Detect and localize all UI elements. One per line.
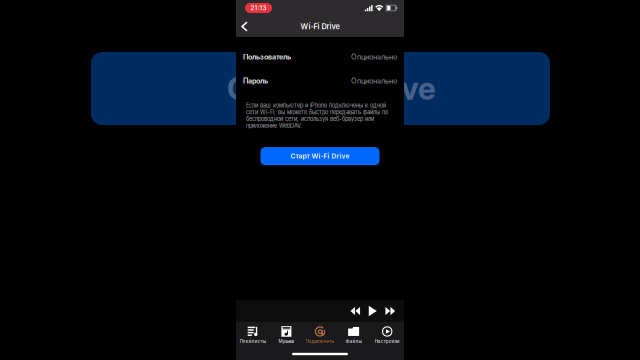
button[interactable]: Настройки <box>370 323 404 347</box>
button[interactable]: Старт Wi-Fi Drive <box>260 147 379 165</box>
staticText: Пароль <box>243 77 268 85</box>
button[interactable]: Музыка <box>270 323 303 347</box>
staticText: Connect Drive <box>227 70 436 107</box>
staticText: Плейлисты <box>240 339 266 344</box>
button[interactable]: Плейлисты <box>236 323 270 347</box>
button[interactable]: Подключить <box>303 323 337 347</box>
staticText: Опционально <box>351 77 397 85</box>
button[interactable]: Play <box>364 303 381 319</box>
staticText: Старт Wi-Fi Drive <box>290 152 349 160</box>
staticText: Подключить <box>305 339 334 344</box>
staticText: 21:13 <box>250 4 266 12</box>
button[interactable]: Back <box>236 16 253 37</box>
staticText: Опционально <box>351 53 397 61</box>
staticText: Если ваш компьютер и iPhone подключены к… <box>246 102 388 129</box>
button[interactable]: Пароль <box>236 69 404 93</box>
staticText: Файлы <box>346 339 362 344</box>
button[interactable]: Пользователь <box>236 45 404 69</box>
staticText: Настройки <box>375 339 400 344</box>
staticText: Пользователь <box>243 53 291 61</box>
button[interactable]: Файлы <box>337 323 370 347</box>
button[interactable]: Previous <box>346 303 364 319</box>
button[interactable]: Next <box>381 303 399 319</box>
staticText: Wi-Fi Drive <box>300 22 339 31</box>
staticText: Музыка <box>278 339 294 344</box>
